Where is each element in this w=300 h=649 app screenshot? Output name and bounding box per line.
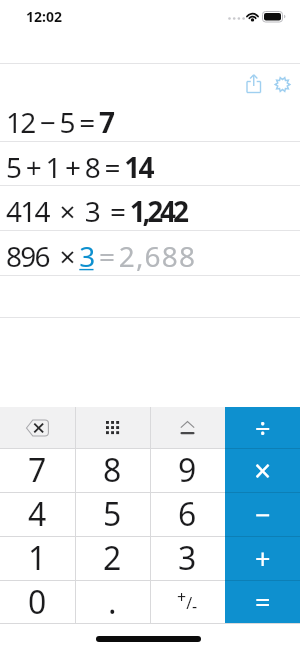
staticText: + bbox=[255, 540, 271, 577]
staticText: = bbox=[255, 583, 271, 620]
button[interactable]: 1 bbox=[0, 536, 75, 580]
staticText: . bbox=[108, 580, 117, 623]
button[interactable]: − bbox=[225, 492, 300, 536]
button[interactable]: = bbox=[225, 580, 300, 623]
button[interactable]: 0 bbox=[0, 580, 75, 623]
button[interactable] bbox=[75, 407, 150, 448]
button[interactable]: 12 − 5 = 7 bbox=[0, 97, 300, 141]
button[interactable]: 5 + 1 + 8 = 14 bbox=[0, 142, 300, 185]
button[interactable]: . bbox=[75, 580, 150, 623]
staticText: 6 bbox=[178, 492, 197, 536]
button[interactable] bbox=[273, 75, 292, 94]
button[interactable]: 2 bbox=[75, 536, 150, 580]
staticText: × bbox=[254, 450, 272, 491]
button[interactable]: +/- bbox=[150, 580, 225, 623]
staticText: 414 × 3 = 1,242 bbox=[6, 192, 186, 230]
staticText: 2 bbox=[103, 536, 122, 580]
button[interactable]: 414 × 3 = 1,242 bbox=[0, 186, 300, 230]
staticText: 1 bbox=[28, 536, 47, 580]
staticText: − bbox=[255, 496, 271, 533]
staticText: 896 × 3 = 2,688 bbox=[6, 237, 197, 275]
button[interactable]: 896 × 3 = 2,688 bbox=[0, 231, 300, 275]
button[interactable]: 3 bbox=[150, 536, 225, 580]
button[interactable] bbox=[244, 73, 264, 95]
button[interactable]: 6 bbox=[150, 492, 225, 536]
staticText: 4 bbox=[28, 492, 47, 536]
staticText: 12 − 5 = 7 bbox=[6, 103, 114, 141]
button[interactable] bbox=[150, 407, 225, 448]
staticText: 7 bbox=[28, 448, 47, 492]
staticText: 12:02 bbox=[26, 7, 62, 26]
staticText: 3 bbox=[178, 536, 197, 580]
button[interactable]: ÷ bbox=[225, 407, 300, 448]
staticText: 5 bbox=[103, 492, 122, 536]
staticText: +/- bbox=[177, 586, 198, 617]
button[interactable]: 5 bbox=[75, 492, 150, 536]
staticText: 9 bbox=[178, 448, 197, 492]
button[interactable]: × bbox=[225, 448, 300, 492]
button[interactable]: 9 bbox=[150, 448, 225, 492]
button[interactable] bbox=[0, 407, 75, 448]
staticText: 0 bbox=[28, 580, 47, 623]
button[interactable]: 4 bbox=[0, 492, 75, 536]
button[interactable]: + bbox=[225, 536, 300, 580]
button[interactable]: 8 bbox=[75, 448, 150, 492]
staticText: 8 bbox=[103, 448, 122, 492]
staticText: 5 + 1 + 8 = 14 bbox=[6, 148, 153, 186]
button[interactable]: 7 bbox=[0, 448, 75, 492]
staticText: ÷ bbox=[255, 409, 271, 446]
